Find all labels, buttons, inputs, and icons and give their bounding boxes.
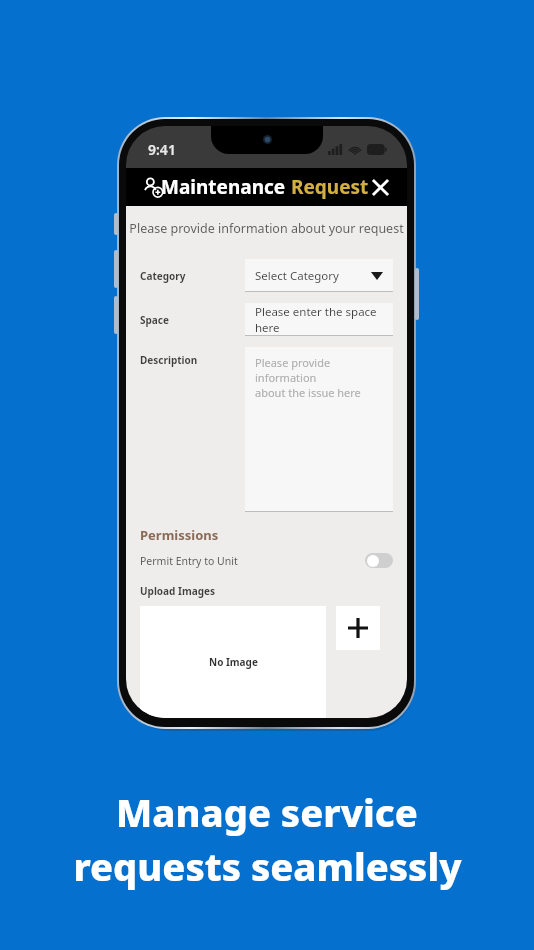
staticText: Please enter the space here — [255, 304, 393, 336]
staticText: Request — [291, 174, 369, 200]
button[interactable]: No Image — [140, 606, 326, 718]
button[interactable]: Add person — [140, 174, 166, 200]
staticText: Manage service — [116, 786, 418, 838]
staticText: Permit Entry to Unit — [140, 554, 238, 568]
button[interactable]: Select Category — [245, 259, 393, 292]
staticText: Maintenance — [161, 174, 291, 200]
staticText: Please provide information about the iss… — [255, 355, 393, 400]
staticText: Category — [140, 269, 245, 283]
button[interactable]: Please provide information about the iss… — [245, 347, 393, 512]
staticText: Permissions — [140, 526, 219, 544]
button[interactable]: Add image — [336, 606, 380, 650]
staticText: Space — [140, 313, 245, 327]
staticText: Upload Images — [140, 584, 215, 598]
button[interactable]: Please enter the space here — [245, 303, 393, 336]
staticText: requests seamlessly — [73, 840, 462, 892]
staticText: No Image — [209, 655, 258, 669]
staticText: Description — [140, 353, 245, 367]
button[interactable]: Permit Entry to Unit — [140, 553, 393, 568]
staticText: Select Category — [255, 268, 339, 284]
staticText: 9:41 — [148, 140, 176, 159]
staticText: Please provide information about your re… — [126, 220, 407, 237]
button[interactable]: Close — [365, 172, 395, 202]
